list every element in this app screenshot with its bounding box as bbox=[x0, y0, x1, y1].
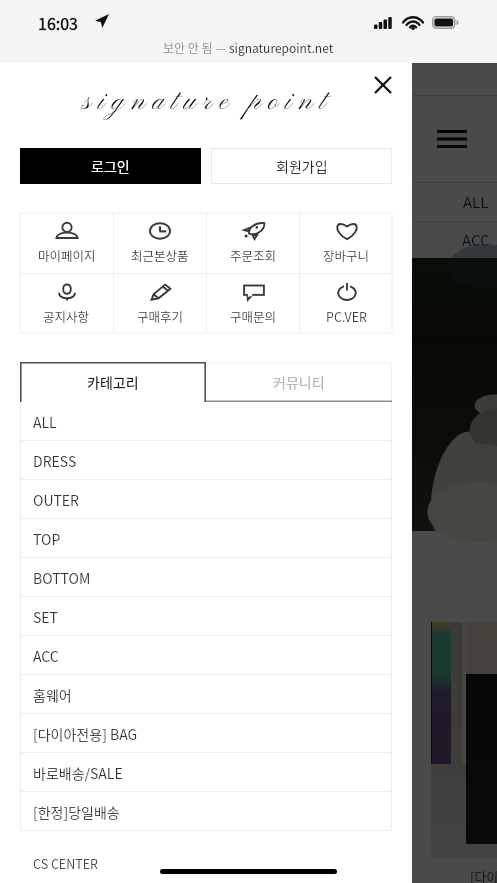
staticText: DRESS bbox=[33, 451, 77, 471]
button[interactable]: 공지사항 bbox=[20, 274, 113, 333]
staticText: TOP bbox=[33, 529, 61, 549]
staticText: 회원가입 bbox=[276, 156, 328, 176]
staticText: ACC bbox=[462, 229, 490, 251]
staticText: 최근본상품 bbox=[131, 246, 189, 264]
button[interactable]: ALL bbox=[20, 402, 392, 441]
staticText: 16:03 bbox=[38, 11, 78, 34]
button[interactable]: 홈웨어 bbox=[20, 675, 392, 714]
staticText: [다이아전용] 칼라 니트 bbox=[470, 867, 497, 883]
button[interactable]: 카테고리 bbox=[20, 362, 206, 402]
button[interactable]: 구매후기 bbox=[114, 274, 206, 333]
button[interactable]: 회원가입 bbox=[211, 148, 392, 184]
staticText: 구매후기 bbox=[137, 307, 184, 325]
button[interactable]: 마이페이지 bbox=[20, 213, 113, 273]
button[interactable]: ACC bbox=[0, 222, 497, 258]
staticText: ALL bbox=[33, 412, 57, 432]
staticText: 카테고리 bbox=[87, 372, 139, 392]
staticText: SET bbox=[33, 607, 58, 627]
button[interactable]: BOTTOM bbox=[20, 558, 392, 597]
staticText: [한정]당일배송 bbox=[33, 802, 120, 822]
staticText: CS CENTER bbox=[33, 854, 99, 872]
button[interactable]: 바로배송/SALE bbox=[20, 753, 392, 792]
button[interactable]: PC.VER bbox=[300, 274, 392, 333]
staticText: 바로배송/SALE bbox=[33, 763, 123, 783]
button[interactable]: [한정]당일배송 bbox=[20, 792, 392, 831]
staticText: signaturepoint.net bbox=[229, 39, 334, 56]
staticText: 마이페이지 bbox=[38, 246, 96, 264]
button[interactable]: 구매문의 bbox=[207, 274, 299, 333]
button[interactable]: ALL bbox=[0, 183, 497, 221]
button[interactable]: 주문조회 bbox=[207, 213, 299, 273]
staticText: ALL bbox=[463, 191, 489, 213]
staticText: PC.VER bbox=[326, 307, 367, 325]
button[interactable]: 장바구니 bbox=[300, 213, 392, 273]
button[interactable]: DRESS bbox=[20, 441, 392, 480]
button[interactable]: OUTER bbox=[20, 480, 392, 519]
button[interactable]: Close menu bbox=[367, 76, 399, 93]
staticText: signature point bbox=[83, 85, 333, 120]
button[interactable]: 로그인 bbox=[20, 148, 201, 184]
staticText: ACC bbox=[33, 646, 59, 666]
button[interactable]: TOP bbox=[20, 519, 392, 558]
staticText: 주문조회 bbox=[230, 246, 277, 264]
staticText: 로그인 bbox=[91, 156, 130, 176]
button[interactable]: Open menu bbox=[430, 122, 474, 156]
staticText: [다이아전용] BAG bbox=[33, 724, 138, 744]
staticText: OUTER bbox=[33, 490, 80, 510]
button[interactable]: 커뮤니티 bbox=[206, 362, 392, 402]
staticText: BOTTOM bbox=[33, 568, 91, 588]
staticText: 구매문의 bbox=[230, 307, 277, 325]
staticText: 장바구니 bbox=[323, 246, 370, 264]
staticText: 커뮤니티 bbox=[273, 372, 325, 392]
button[interactable]: 최근본상품 bbox=[114, 213, 206, 273]
staticText: 보안 안 됨 — bbox=[163, 39, 229, 56]
staticText: 공지사항 bbox=[43, 307, 90, 325]
staticText: 홈웨어 bbox=[33, 685, 72, 705]
button[interactable]: ACC bbox=[20, 636, 392, 675]
button[interactable]: SET bbox=[20, 597, 392, 636]
button[interactable]: [다이아전용] BAG bbox=[20, 714, 392, 753]
